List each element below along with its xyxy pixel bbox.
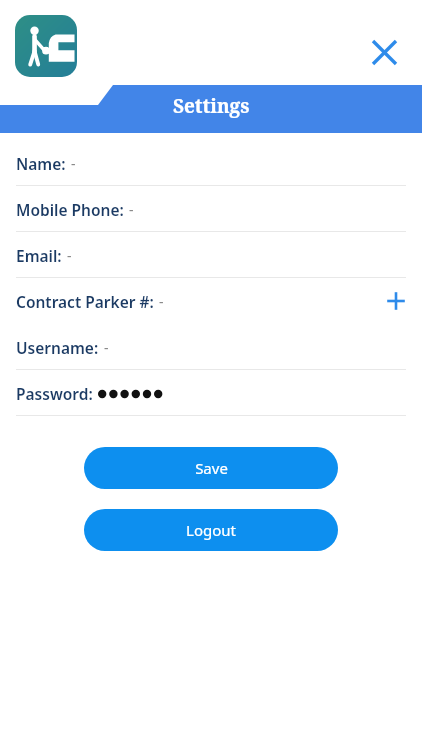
- button[interactable]: App logo: [15, 15, 77, 77]
- button[interactable]: Password:: [0, 370, 422, 416]
- staticText: -: [104, 338, 109, 357]
- staticText: -: [71, 154, 76, 173]
- button[interactable]: Logout: [84, 509, 338, 551]
- button[interactable]: Username:: [0, 324, 422, 370]
- button[interactable]: Mobile Phone:: [0, 186, 422, 232]
- staticText: Username:: [16, 337, 99, 358]
- staticText: Password:: [16, 383, 93, 404]
- staticText: Mobile Phone:: [16, 199, 124, 220]
- button[interactable]: Close: [360, 28, 408, 76]
- staticText: Logout: [186, 520, 236, 540]
- button[interactable]: Add contract parker: [378, 283, 414, 319]
- button[interactable]: Email:: [0, 232, 422, 278]
- staticText: Contract Parker #:: [16, 291, 154, 312]
- staticText: Settings: [173, 93, 250, 119]
- button[interactable]: Save: [84, 447, 338, 489]
- staticText: -: [67, 246, 72, 265]
- button[interactable]: Contract Parker #:: [0, 278, 422, 324]
- staticText: Save: [195, 458, 228, 478]
- button[interactable]: Name:: [0, 140, 422, 186]
- staticText: -: [159, 292, 164, 311]
- staticText: Email:: [16, 245, 62, 266]
- staticText: Name:: [16, 153, 66, 174]
- staticText: -: [129, 200, 134, 219]
